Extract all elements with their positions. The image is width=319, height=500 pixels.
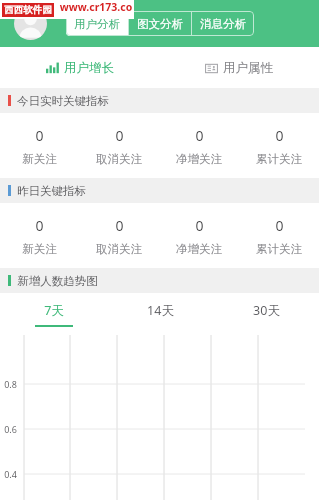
staticText: 净增关注 — [176, 152, 222, 166]
staticText: 用户属性 — [223, 60, 273, 76]
button[interactable]: 消息分析 — [192, 11, 254, 36]
button[interactable]: 0 — [79, 203, 159, 268]
staticText: 用户增长 — [64, 60, 114, 76]
staticText: 取消关注 — [96, 152, 142, 166]
staticText: 新关注 — [22, 152, 57, 166]
staticText: 0 — [275, 126, 284, 145]
staticText: 用户分析 — [74, 17, 120, 31]
staticText: 累计关注 — [256, 242, 302, 256]
button[interactable]: 用户分析 — [66, 11, 128, 36]
button[interactable]: 图文分析 — [129, 11, 191, 36]
staticText: www.cr173.com — [58, 0, 134, 19]
staticText: 0 — [35, 216, 44, 235]
button[interactable]: 0 — [239, 113, 319, 178]
staticText: 图文分析 — [137, 17, 183, 31]
button[interactable]: 30天 — [213, 293, 319, 327]
button[interactable]: 14天 — [107, 293, 213, 327]
staticText: 0 — [115, 126, 124, 145]
staticText: 0 — [195, 216, 204, 235]
staticText: 净增关注 — [176, 242, 222, 256]
staticText: 新关注 — [22, 242, 57, 256]
button[interactable]: 用户属性 — [159, 47, 319, 88]
button[interactable]: 0 — [0, 113, 79, 178]
staticText: 0.6 — [4, 423, 17, 435]
staticText: 0.4 — [4, 468, 17, 480]
staticText: 0 — [275, 216, 284, 235]
button[interactable]: 0 — [239, 203, 319, 268]
staticText: 0 — [115, 216, 124, 235]
button[interactable]: 7天 — [0, 293, 107, 327]
staticText: 0 — [195, 126, 204, 145]
staticText: 今日实时关键指标 — [17, 94, 109, 108]
staticText: 0 — [35, 126, 44, 145]
staticText: 30天 — [253, 302, 280, 319]
button[interactable]: Profile — [14, 7, 47, 40]
button[interactable]: 0 — [0, 203, 79, 268]
staticText: 取消关注 — [96, 242, 142, 256]
staticText: 14天 — [147, 302, 174, 319]
button[interactable]: 0 — [159, 113, 239, 178]
staticText: 7天 — [44, 302, 64, 319]
staticText: 消息分析 — [200, 17, 246, 31]
staticText: 昨日关键指标 — [17, 184, 86, 198]
staticText: 新增人数趋势图 — [17, 274, 98, 288]
staticText: 0.8 — [4, 378, 17, 390]
button[interactable]: 0 — [159, 203, 239, 268]
button[interactable]: 用户增长 — [0, 47, 159, 88]
button[interactable]: 0 — [79, 113, 159, 178]
staticText: 累计关注 — [256, 152, 302, 166]
staticText: 西西软件园 — [4, 4, 52, 16]
